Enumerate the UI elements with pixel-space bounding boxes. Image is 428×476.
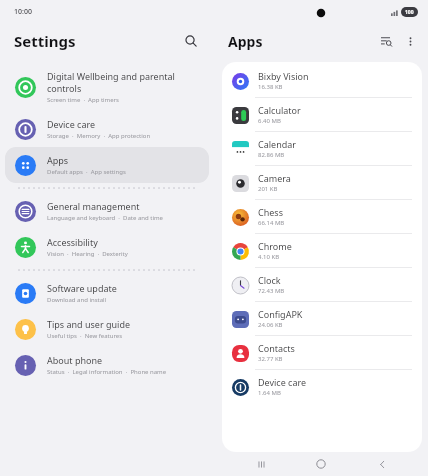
staticText: Language and keyboard · Date and time <box>47 214 163 222</box>
staticText: Screen time · App timers <box>47 96 119 104</box>
button[interactable]: Software update <box>5 275 209 311</box>
staticText: Default apps · App settings <box>47 168 126 176</box>
button[interactable]: Sort and search apps <box>374 29 398 53</box>
button[interactable]: General management <box>5 193 209 229</box>
button[interactable]: Device care <box>222 370 422 403</box>
button[interactable]: ConfigAPK <box>222 302 422 335</box>
button[interactable]: Chrome <box>222 234 422 267</box>
staticText: ConfigAPK <box>258 308 303 320</box>
staticText: Apps <box>228 32 374 51</box>
button[interactable]: Clock <box>222 268 422 301</box>
button[interactable]: Bixby Vision <box>222 64 422 97</box>
button[interactable]: Chess <box>222 200 422 233</box>
staticText: 4.10 KB <box>258 253 280 261</box>
button[interactable]: Digital Wellbeing and parental controls <box>5 63 209 111</box>
staticText: Download and install <box>47 296 107 304</box>
staticText: Settings <box>14 31 178 51</box>
staticText: 10:00 <box>14 7 32 17</box>
button[interactable]: Accessibility <box>5 229 209 265</box>
staticText: About phone <box>47 354 103 366</box>
staticText: Chess <box>258 206 283 218</box>
staticText: 6.40 MB <box>258 117 281 125</box>
staticText: Camera <box>258 172 291 184</box>
staticText: 32.77 KB <box>258 355 283 363</box>
staticText: Digital Wellbeing and parental controls <box>47 70 175 94</box>
button[interactable]: Contacts <box>222 336 422 369</box>
staticText: Accessibility <box>47 236 98 248</box>
staticText: Useful tips · New features <box>47 332 123 340</box>
staticText: Device care <box>258 376 307 388</box>
button[interactable]: Device care <box>5 111 209 147</box>
button[interactable]: Apps <box>5 147 209 183</box>
staticText: Calculator <box>258 104 301 116</box>
button[interactable]: Search settings <box>178 28 204 54</box>
staticText: Vision · Hearing · Dexterity <box>47 250 128 258</box>
staticText: 100 <box>405 9 414 16</box>
button[interactable]: Tips and user guide <box>5 311 209 347</box>
staticText: Clock <box>258 274 281 286</box>
staticText: 82.86 MB <box>258 151 285 159</box>
staticText: Chrome <box>258 240 292 252</box>
staticText: General management <box>47 200 140 212</box>
staticText: 24.06 KB <box>258 321 283 329</box>
button[interactable]: Calendar <box>222 132 422 165</box>
staticText: 1.64 MB <box>258 389 281 397</box>
staticText: Storage · Memory · App protection <box>47 132 151 140</box>
staticText: Bixby Vision <box>258 70 309 82</box>
staticText: Apps <box>47 154 69 166</box>
staticText: Device care <box>47 118 96 130</box>
button[interactable]: About phone <box>5 347 209 383</box>
staticText: Tips and user guide <box>47 318 131 330</box>
button[interactable]: Recent apps <box>247 452 275 476</box>
staticText: Contacts <box>258 342 295 354</box>
button[interactable]: Camera <box>222 166 422 199</box>
button[interactable]: Home <box>307 452 335 476</box>
staticText: 72.43 MB <box>258 287 285 295</box>
staticText: 16.38 KB <box>258 83 283 91</box>
staticText: Status · Legal information · Phone name <box>47 368 167 376</box>
staticText: 201 KB <box>258 185 278 193</box>
staticText: 66.14 MB <box>258 219 285 227</box>
staticText: Calendar <box>258 138 296 150</box>
button[interactable]: More options <box>398 29 422 53</box>
button[interactable]: Back <box>368 452 396 476</box>
button[interactable]: Calculator <box>222 98 422 131</box>
staticText: Software update <box>47 282 117 294</box>
